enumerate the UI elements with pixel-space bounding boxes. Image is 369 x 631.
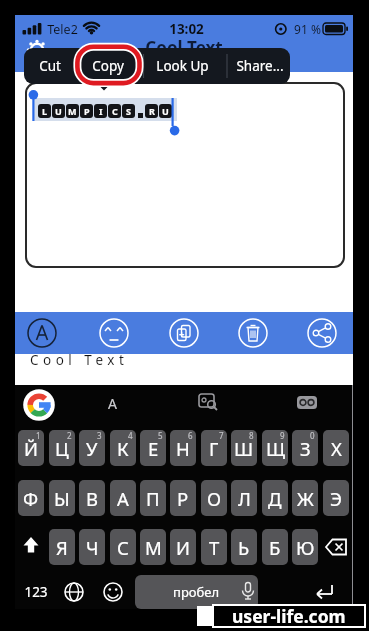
- button[interactable]: В: [79, 480, 105, 516]
- button[interactable]: Ц: [49, 430, 75, 466]
- staticText: L: [42, 105, 48, 117]
- button[interactable]: Й: [18, 430, 44, 466]
- staticText: C: [112, 105, 118, 117]
- staticText: I: [99, 105, 103, 117]
- staticText: Look Up: [156, 57, 209, 75]
- staticText: У: [86, 436, 98, 461]
- button[interactable]: [23, 389, 55, 421]
- staticText: Ц: [55, 436, 69, 461]
- button[interactable]: Е: [140, 430, 166, 466]
- staticText: 0: [310, 430, 315, 441]
- button[interactable]: И: [170, 529, 196, 565]
- staticText: Ж: [297, 486, 314, 511]
- button[interactable]: Ы: [49, 480, 75, 516]
- button[interactable]: С: [110, 529, 136, 565]
- button[interactable]: О: [201, 480, 227, 516]
- staticText: user-life.com: [232, 604, 346, 628]
- staticText: Copy: [92, 57, 124, 75]
- staticText: А: [117, 486, 129, 511]
- button[interactable]: Ш: [231, 430, 257, 466]
- staticText: 3: [97, 430, 102, 441]
- button[interactable]: Ф: [18, 480, 44, 516]
- button[interactable]: Щ: [262, 430, 288, 466]
- button[interactable]: Ч: [79, 529, 105, 565]
- staticText: Б: [269, 535, 281, 560]
- staticText: 7: [219, 430, 224, 441]
- button[interactable]: Share...: [190, 52, 290, 80]
- staticText: Share...: [236, 57, 284, 75]
- button[interactable]: Б: [262, 529, 288, 565]
- staticText: 9: [280, 430, 285, 441]
- staticText: С: [117, 535, 129, 560]
- staticText: Е: [148, 436, 159, 461]
- staticText: 1: [36, 430, 41, 441]
- staticText: Х: [331, 436, 342, 461]
- staticText: Cut: [39, 57, 61, 75]
- button[interactable]: М: [140, 529, 166, 565]
- button[interactable]: [196, 390, 220, 414]
- staticText: Й: [24, 436, 38, 461]
- staticText: 5: [158, 430, 163, 441]
- button[interactable]: Look Up: [112, 52, 252, 80]
- staticText: U: [162, 105, 169, 117]
- staticText: Л: [238, 486, 251, 511]
- button[interactable]: пробел: [135, 575, 258, 609]
- button[interactable]: [60, 578, 88, 606]
- staticText: Cool Text: [145, 36, 223, 59]
- staticText: Д: [268, 486, 282, 511]
- button[interactable]: [237, 317, 269, 349]
- button[interactable]: [26, 317, 58, 349]
- button[interactable]: 123: [0, 578, 106, 606]
- staticText: Ш: [234, 436, 254, 461]
- button[interactable]: Л: [231, 480, 257, 516]
- button[interactable]: У: [79, 430, 105, 466]
- staticText: Г: [209, 436, 219, 461]
- button[interactable]: Т: [201, 529, 227, 565]
- button[interactable]: А: [110, 480, 136, 516]
- staticText: Я: [56, 535, 68, 560]
- staticText: 123: [24, 583, 48, 601]
- button[interactable]: П: [140, 480, 166, 516]
- staticText: З: [300, 436, 311, 461]
- staticText: Т: [209, 535, 220, 560]
- button[interactable]: Ж: [292, 480, 318, 516]
- staticText: И: [176, 535, 190, 560]
- button[interactable]: Я: [49, 529, 75, 565]
- staticText: Ф: [23, 486, 39, 511]
- button[interactable]: A: [42, 389, 182, 417]
- staticText: 13:02: [169, 20, 204, 38]
- button[interactable]: [295, 390, 319, 414]
- staticText: К: [117, 436, 129, 461]
- button[interactable]: З: [292, 430, 318, 466]
- button[interactable]: Cut: [24, 52, 120, 80]
- button[interactable]: [17, 531, 45, 563]
- staticText: 8: [249, 430, 254, 441]
- button[interactable]: [98, 317, 130, 349]
- button[interactable]: [321, 531, 353, 563]
- button[interactable]: Ь: [231, 529, 257, 565]
- staticText: М: [145, 535, 162, 560]
- button[interactable]: [306, 317, 338, 349]
- button[interactable]: Д: [262, 480, 288, 516]
- staticText: 6: [188, 430, 193, 441]
- staticText: В: [86, 486, 99, 511]
- staticText: R: [149, 105, 155, 117]
- staticText: A: [108, 394, 117, 413]
- staticText: Cool Text: [30, 351, 129, 369]
- button[interactable]: К: [110, 430, 136, 466]
- button[interactable]: Э: [323, 480, 349, 516]
- button[interactable]: Н: [170, 430, 196, 466]
- staticText: Р: [177, 486, 189, 511]
- button[interactable]: [311, 577, 341, 607]
- button[interactable]: Ю: [292, 529, 318, 565]
- button[interactable]: Р: [170, 480, 196, 516]
- button[interactable]: Х: [323, 430, 349, 466]
- button[interactable]: Г: [201, 430, 227, 466]
- button[interactable]: [99, 578, 127, 606]
- button[interactable]: [168, 317, 200, 349]
- staticText: Э: [330, 486, 342, 511]
- staticText: Ю: [296, 535, 315, 560]
- button[interactable]: Copy: [38, 52, 178, 80]
- staticText: О: [207, 486, 222, 511]
- staticText: 2: [67, 430, 72, 441]
